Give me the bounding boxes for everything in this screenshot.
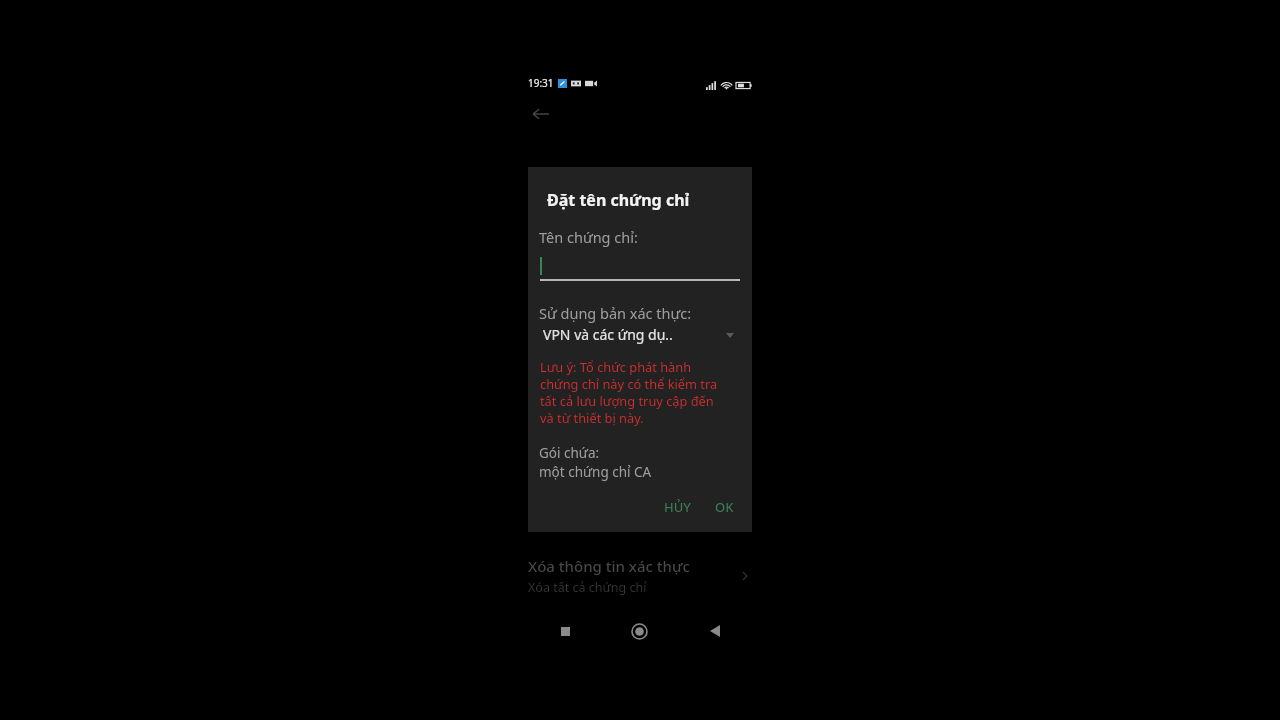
staticText: Sử dụng bản xác thực: bbox=[539, 303, 692, 323]
button[interactable]: Back bbox=[677, 614, 752, 648]
staticText: và từ thiết bị này. bbox=[540, 409, 644, 426]
staticText: Đặt tên chứng chỉ bbox=[547, 189, 690, 211]
button[interactable]: Back bbox=[528, 101, 554, 127]
staticText: tất cả lưu lượng truy cập đến bbox=[540, 392, 714, 409]
button[interactable]: Home bbox=[602, 614, 677, 648]
button[interactable]: Xóa thông tin xác thực bbox=[528, 548, 752, 604]
button[interactable]: Certificate name input bbox=[540, 255, 740, 283]
staticText: Lưu ý: Tổ chức phát hành bbox=[540, 358, 692, 375]
staticText: Xóa thông tin xác thực bbox=[528, 556, 690, 576]
staticText: Xóa tất cả chứng chỉ bbox=[528, 579, 647, 596]
button[interactable]: HỦY bbox=[654, 490, 701, 524]
button[interactable]: Recents bbox=[528, 614, 602, 648]
button[interactable]: VPN và các ứng dụ.. bbox=[540, 325, 740, 349]
button[interactable]: OK bbox=[705, 490, 744, 524]
staticText: OK bbox=[715, 498, 734, 516]
staticText: 19:31 bbox=[528, 76, 554, 90]
staticText: VPN và các ứng dụ.. bbox=[543, 325, 673, 344]
staticText: Gói chứa: bbox=[539, 444, 600, 462]
staticText: Tên chứng chỉ: bbox=[539, 227, 638, 247]
staticText: HỦY bbox=[664, 498, 691, 516]
staticText: một chứng chỉ CA bbox=[539, 463, 652, 481]
staticText: chứng chỉ này có thể kiểm tra bbox=[540, 375, 718, 392]
